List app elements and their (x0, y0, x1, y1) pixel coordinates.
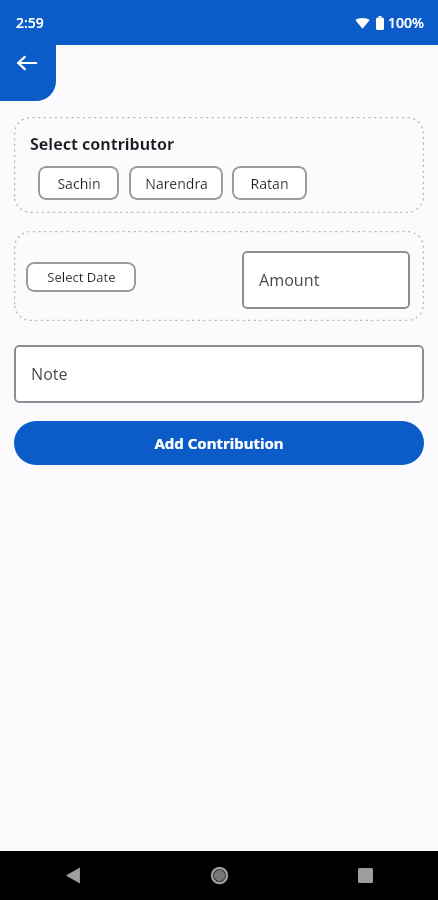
staticText: 2:59 (16, 13, 44, 32)
staticText: Select contributor (30, 133, 175, 155)
button[interactable]: Note (14, 345, 424, 403)
staticText: Narendra (145, 174, 208, 193)
staticText: Amount (259, 269, 320, 291)
button[interactable]: Amount (242, 251, 410, 309)
button[interactable]: Back (0, 851, 146, 900)
staticText: Note (31, 363, 68, 385)
staticText: Select Date (47, 268, 116, 286)
button[interactable]: Sachin (38, 166, 119, 200)
button[interactable]: Ratan (232, 166, 307, 200)
staticText: Ratan (250, 174, 289, 193)
button[interactable]: Add Contribution (14, 421, 424, 465)
button[interactable]: Home (146, 851, 292, 900)
staticText: Sachin (57, 174, 101, 193)
staticText: Add Contribution (154, 433, 284, 453)
button[interactable]: Recent apps (292, 851, 438, 900)
button[interactable]: Select Date (26, 262, 136, 292)
button[interactable]: Narendra (129, 166, 223, 200)
button[interactable]: Back (0, 45, 56, 101)
staticText: 100% (388, 13, 424, 32)
